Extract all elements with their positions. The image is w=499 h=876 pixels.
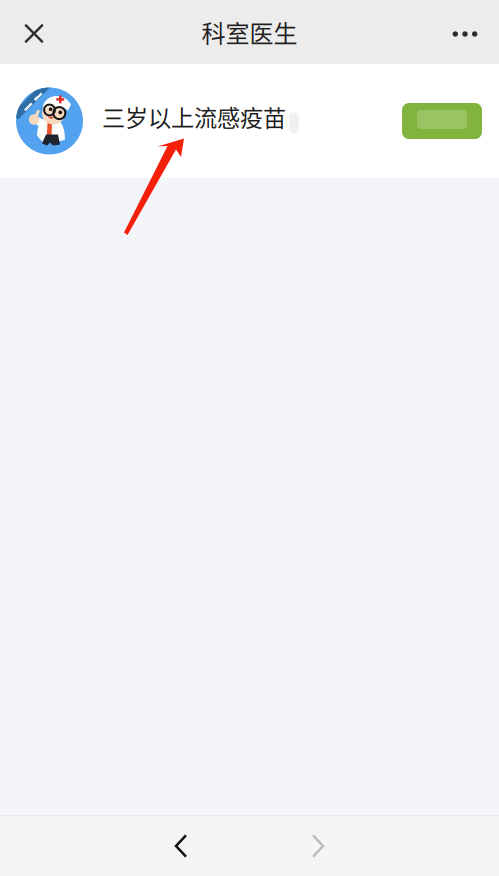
button[interactable]: Close [10, 0, 58, 64]
button[interactable]: Back [150, 816, 212, 876]
staticText: 科室医生 [201, 15, 297, 49]
button[interactable]: Forward [287, 816, 349, 876]
button[interactable]: More [439, 0, 491, 64]
staticText: 三岁以上流感疫苗 [102, 100, 286, 133]
button[interactable] [402, 103, 482, 139]
